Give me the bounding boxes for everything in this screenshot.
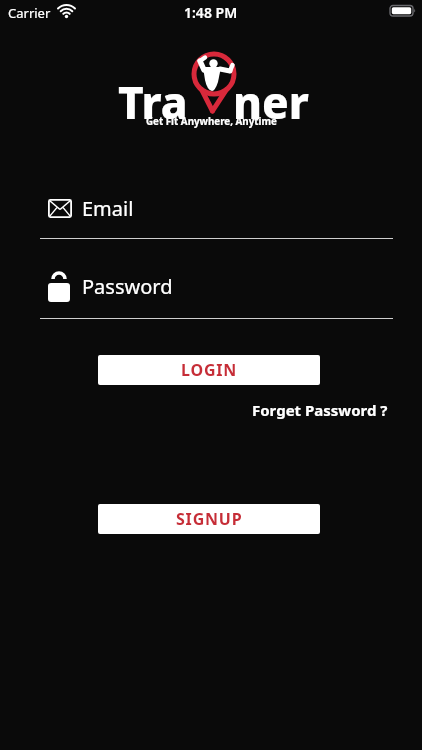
staticText: Email <box>82 195 134 222</box>
staticText: LOGIN <box>181 359 238 381</box>
staticText: 1:48 PM <box>184 3 238 22</box>
staticText: Password <box>82 273 173 300</box>
staticText: Tra <box>118 72 188 132</box>
staticText: Get Fit Anywhere, Anytime <box>146 115 277 128</box>
staticText: ner <box>233 72 309 132</box>
button[interactable]: Email <box>40 190 393 226</box>
button[interactable]: SIGNUP <box>98 504 320 534</box>
button[interactable]: LOGIN <box>98 355 320 385</box>
staticText: SIGNUP <box>176 508 243 530</box>
staticText: Carrier <box>8 4 51 22</box>
button[interactable]: Password <box>40 268 393 304</box>
button[interactable]: Forget Password ? <box>252 400 388 420</box>
